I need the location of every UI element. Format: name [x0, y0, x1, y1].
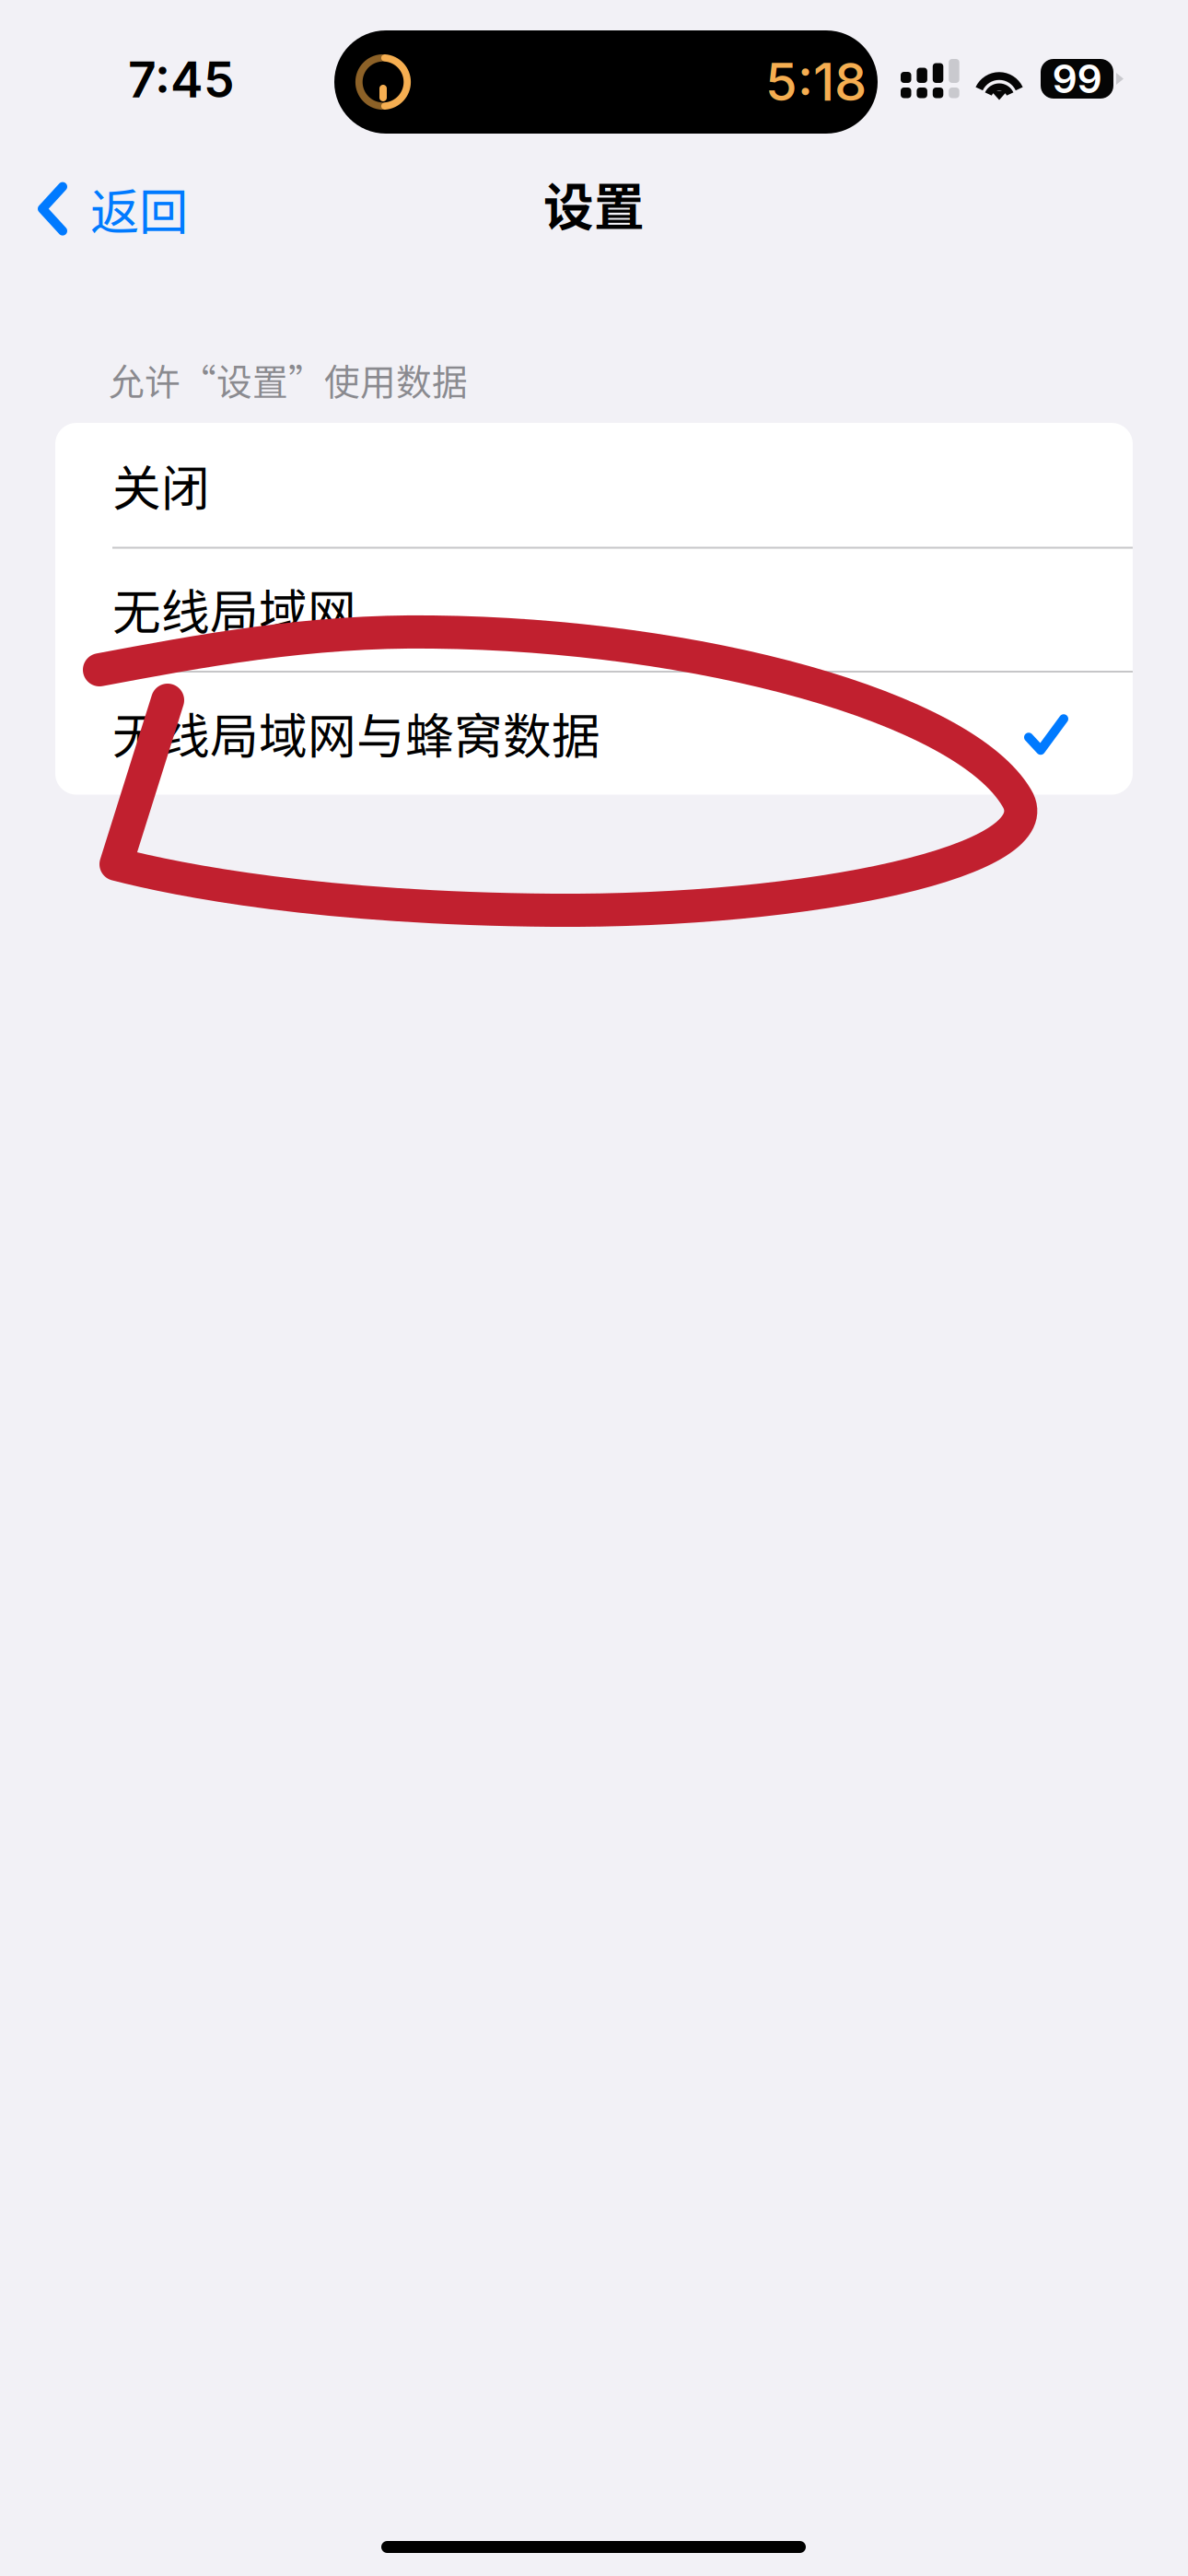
- staticText: 返回: [90, 173, 188, 244]
- button[interactable]: 无线局域网与蜂窝数据: [55, 671, 1133, 795]
- button[interactable]: 返回: [0, 160, 215, 257]
- staticText: 设置: [543, 167, 645, 240]
- staticText: 允许“设置”使用数据: [109, 354, 468, 405]
- button[interactable]: 无线局域网: [55, 547, 1133, 671]
- staticText: 关闭: [112, 450, 210, 520]
- staticText: 无线局域网与蜂窝数据: [112, 698, 600, 768]
- staticText: 99: [1052, 55, 1102, 103]
- staticText: 7:45: [128, 50, 235, 109]
- button[interactable]: 关闭: [55, 423, 1133, 547]
- staticText: 无线局域网: [112, 574, 356, 644]
- staticText: 5:18: [765, 51, 867, 113]
